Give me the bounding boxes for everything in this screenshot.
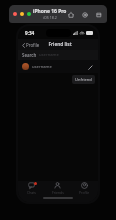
button[interactable]: Profile xyxy=(21,41,41,49)
staticText: iOS 18.2 xyxy=(43,15,57,20)
button[interactable]: Minimize xyxy=(20,12,24,16)
button[interactable]: Friends xyxy=(44,181,71,196)
button[interactable]: Home xyxy=(66,10,75,19)
button[interactable]: Settings xyxy=(80,10,89,19)
staticText: iPhone 16 Pro xyxy=(33,8,67,15)
staticText: Profile xyxy=(79,190,90,195)
button[interactable]: Zoom xyxy=(27,12,31,16)
staticText: 9:34 xyxy=(25,30,35,36)
staticText: Search xyxy=(22,52,37,58)
button[interactable]: username xyxy=(18,60,98,73)
staticText: Chats xyxy=(27,190,36,195)
staticText: Friends xyxy=(52,190,64,195)
button[interactable]: Edit friend xyxy=(86,63,94,71)
staticText: Profile xyxy=(26,42,40,48)
staticText: username xyxy=(32,64,52,70)
button[interactable]: Unfriend xyxy=(72,75,95,84)
button[interactable]: Profile xyxy=(71,181,98,196)
button[interactable]: Search xyxy=(18,50,98,60)
staticText: Friend list xyxy=(48,41,72,48)
button[interactable]: Close xyxy=(13,12,17,16)
button[interactable]: Chats xyxy=(18,181,44,196)
button[interactable]: More xyxy=(94,10,103,19)
staticText: Unfriend xyxy=(75,77,92,82)
staticText: username xyxy=(39,52,59,58)
